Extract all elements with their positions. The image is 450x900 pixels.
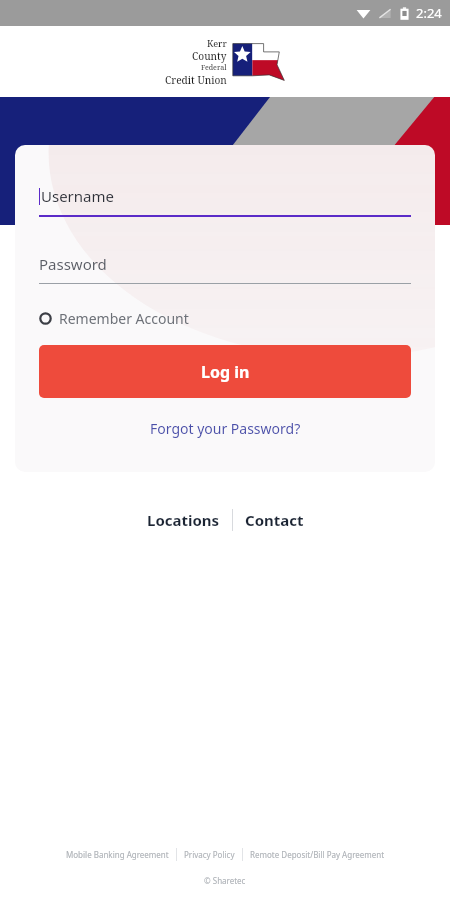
button[interactable]: Remote Deposit/Bill Pay Agreement — [243, 846, 392, 863]
staticText: Privacy Policy — [184, 849, 235, 860]
staticText: Remember Account — [59, 309, 189, 328]
staticText: Password — [39, 254, 107, 274]
button[interactable]: Remember Account — [39, 305, 189, 332]
other: Signal — [378, 6, 392, 20]
button[interactable]: Locations — [135, 504, 232, 536]
staticText: Credit Union — [165, 73, 227, 87]
staticText: County — [192, 49, 227, 63]
staticText: Remote Deposit/Bill Pay Agreement — [250, 849, 385, 860]
staticText: Mobile Banking Agreement — [66, 849, 169, 860]
staticText: Locations — [147, 510, 220, 530]
button[interactable]: Privacy Policy — [177, 846, 242, 863]
button[interactable]: Contact — [233, 504, 316, 536]
button[interactable]: Mobile Banking Agreement — [59, 846, 176, 863]
other: Battery — [399, 6, 410, 21]
staticText: Federal — [201, 63, 227, 73]
staticText: © Sharetec — [204, 875, 246, 886]
button[interactable]: Log in — [39, 345, 411, 398]
staticText: Username — [41, 186, 114, 206]
staticText: 2:24 — [416, 4, 442, 22]
staticText: Contact — [245, 510, 304, 530]
button[interactable]: Password — [39, 245, 411, 283]
staticText: Log in — [201, 361, 250, 383]
staticText: Kerr — [207, 37, 227, 49]
button[interactable]: Forgot your Password? — [140, 414, 311, 443]
button[interactable]: Username — [39, 177, 411, 215]
staticText: Forgot your Password? — [150, 419, 301, 438]
other: Wi-Fi — [356, 6, 371, 21]
